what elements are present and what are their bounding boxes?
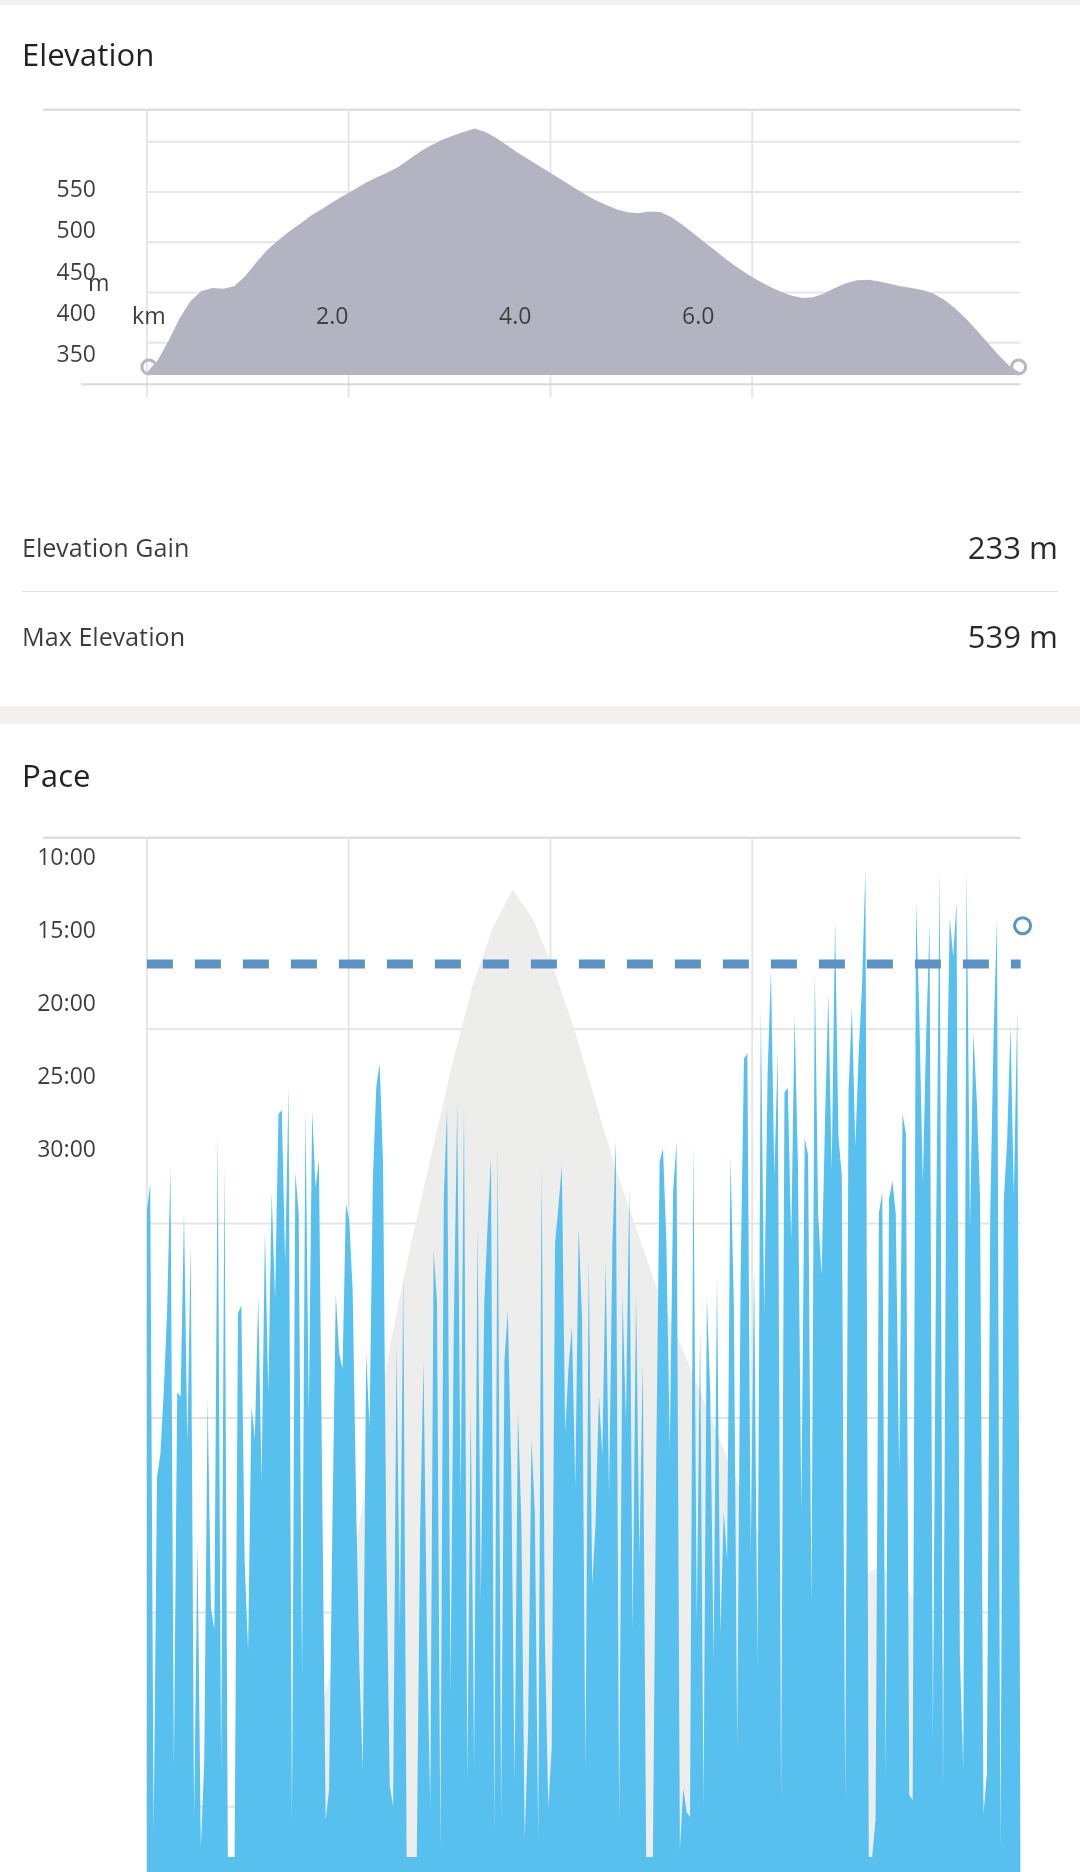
staticText: 4.0 <box>499 299 532 330</box>
staticText: 6.0 <box>682 299 715 330</box>
staticText: Elevation Gain <box>22 530 190 564</box>
staticText: Elevation <box>22 33 155 75</box>
staticText: 400 <box>40 296 96 327</box>
staticText: 25:00 <box>22 1059 96 1090</box>
staticText: 15:00 <box>22 913 96 944</box>
staticText: 500 <box>40 213 96 244</box>
staticText: 20:00 <box>22 986 96 1017</box>
staticText: 450 <box>40 255 96 286</box>
staticText: 233 m <box>967 526 1058 568</box>
staticText: Max Elevation <box>22 619 186 653</box>
button[interactable]: Elevation Gain <box>0 503 1080 591</box>
staticText: 550 <box>40 172 96 203</box>
staticText: 350 <box>40 337 96 368</box>
button[interactable]: Max Elevation <box>0 592 1080 680</box>
staticText: Pace <box>22 754 91 796</box>
staticText: 539 m <box>967 615 1058 657</box>
staticText: km <box>132 299 166 330</box>
staticText: 30:00 <box>22 1132 96 1163</box>
staticText: 10:00 <box>22 840 96 871</box>
staticText: m <box>88 266 110 297</box>
staticText: 2.0 <box>316 299 349 330</box>
